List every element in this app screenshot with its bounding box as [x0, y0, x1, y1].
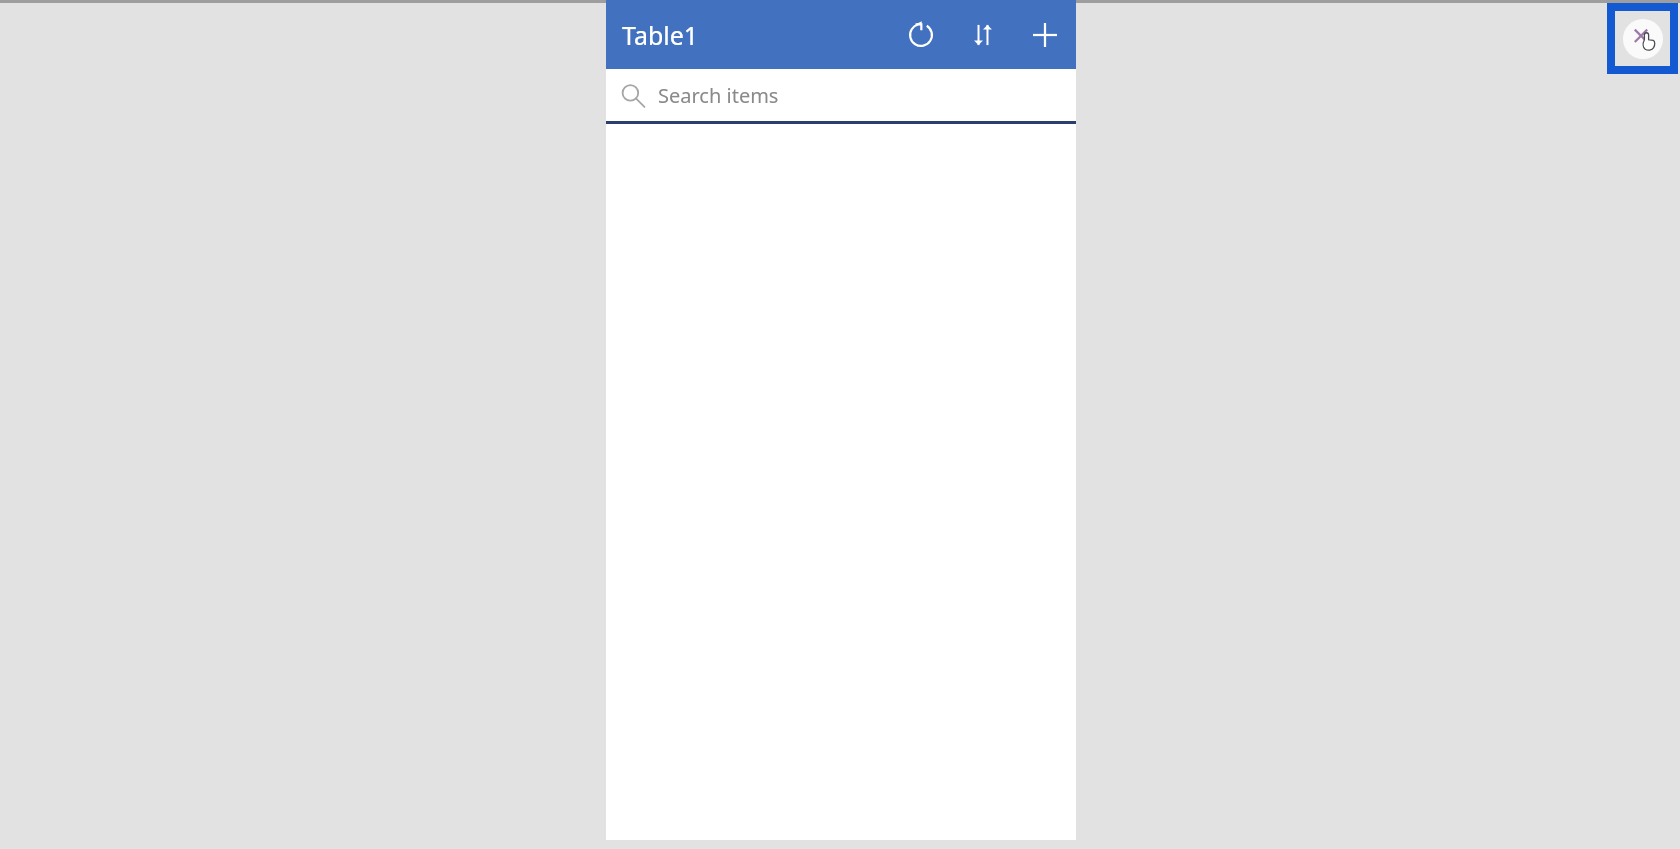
staticText: Table1 [622, 18, 699, 52]
button[interactable]: Sort [952, 4, 1014, 66]
staticText: Search items [658, 82, 779, 109]
button[interactable]: Search items [606, 69, 1076, 121]
button[interactable]: Refresh [890, 4, 952, 66]
button[interactable]: Close [1607, 3, 1678, 74]
button[interactable]: Add item [1014, 4, 1076, 66]
